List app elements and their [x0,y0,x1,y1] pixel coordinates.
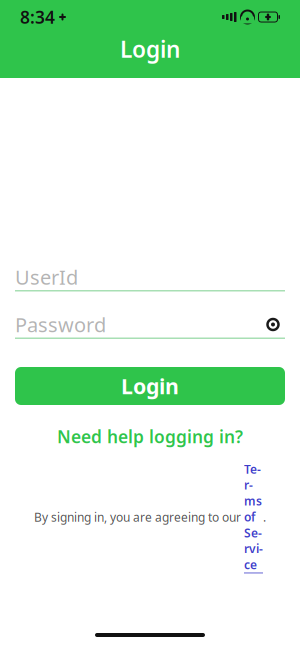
button[interactable]: Terms of Service [244,461,263,573]
staticText: 8:34 [20,5,55,28]
staticText: By signing in, you are agreeing to our [34,509,244,525]
staticText: Need help logging in? [57,425,243,448]
button[interactable]: Need help logging in? [15,422,285,451]
staticText: Terms of Service [244,461,263,572]
button[interactable]: Login [15,367,285,405]
staticText: Login [120,34,180,64]
staticText: UserId [15,264,78,290]
staticText: . [263,509,266,525]
staticText: Login [121,372,179,400]
button[interactable]: Show password [261,312,285,336]
staticText: Password [15,311,106,338]
